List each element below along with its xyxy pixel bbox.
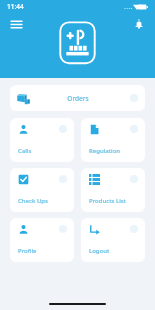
button[interactable]: Check Ups: [10, 168, 74, 212]
button[interactable]: Profile: [10, 218, 74, 262]
button[interactable]: Regulation: [81, 118, 145, 162]
button[interactable]: Orders: [10, 85, 145, 111]
button[interactable]: Logout: [81, 218, 145, 262]
staticText: Products List: [89, 197, 126, 205]
button[interactable]: Menu: [6, 14, 26, 34]
staticText: Logout: [89, 247, 110, 255]
button[interactable]: Calls: [10, 118, 74, 162]
button[interactable]: Products List: [81, 168, 145, 212]
button[interactable]: Notifications: [129, 14, 149, 34]
staticText: Check Ups: [18, 197, 48, 205]
staticText: Profile: [18, 247, 37, 255]
staticText: Orders: [67, 94, 89, 103]
staticText: Regulation: [89, 147, 121, 155]
staticText: Calls: [18, 147, 32, 155]
staticText: 11:44: [7, 2, 24, 11]
